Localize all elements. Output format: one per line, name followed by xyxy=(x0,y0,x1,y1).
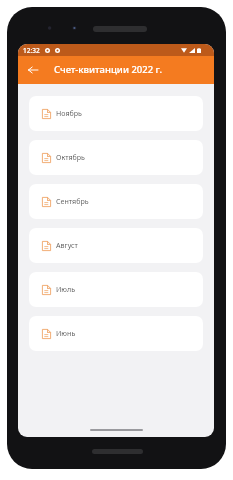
staticText: Август xyxy=(56,240,78,250)
button[interactable]: Назад xyxy=(18,56,47,84)
staticText: 12:32 xyxy=(23,46,40,55)
staticText: Ноябрь xyxy=(56,108,82,118)
button[interactable]: Июль xyxy=(29,272,203,307)
staticText: Счет-квитанции 2022 г. xyxy=(54,63,163,76)
staticText: Сентябрь xyxy=(56,196,89,206)
button[interactable]: Август xyxy=(29,228,203,263)
staticText: Октябрь xyxy=(56,152,85,162)
staticText: Июнь xyxy=(56,328,76,338)
button[interactable]: Сентябрь xyxy=(29,184,203,219)
staticText: Июль xyxy=(56,284,76,294)
button[interactable]: Июнь xyxy=(29,316,203,351)
button[interactable]: Ноябрь xyxy=(29,96,203,131)
button[interactable]: Октябрь xyxy=(29,140,203,175)
